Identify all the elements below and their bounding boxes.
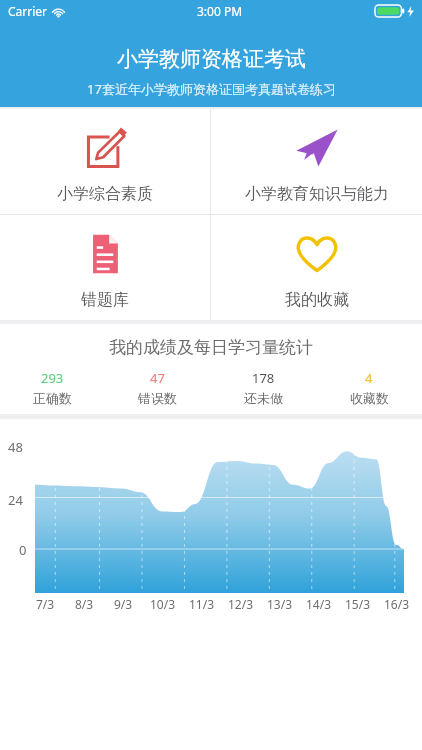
staticText: 24 xyxy=(8,491,23,509)
staticText: 48 xyxy=(8,438,23,456)
staticText: 4 xyxy=(365,369,373,387)
staticText: 14/3 xyxy=(306,596,332,612)
button[interactable]: 47 xyxy=(105,369,210,406)
staticText: 正确数 xyxy=(33,390,72,406)
button[interactable]: 178 xyxy=(210,369,316,406)
staticText: 3:00 PM xyxy=(197,3,243,19)
staticText: 我的成绩及每日学习量统计 xyxy=(109,337,313,358)
staticText: Carrier xyxy=(8,3,48,19)
staticText: 178 xyxy=(252,369,275,387)
staticText: 错题库 xyxy=(81,290,129,310)
staticText: 15/3 xyxy=(345,596,371,612)
button[interactable]: 小学教育知识与能力 xyxy=(211,109,422,214)
staticText: 小学教师资格证考试 xyxy=(117,46,306,72)
staticText: 16/3 xyxy=(384,596,410,612)
staticText: 还未做 xyxy=(244,390,283,406)
staticText: 9/3 xyxy=(114,596,133,612)
staticText: 12/3 xyxy=(228,596,254,612)
staticText: 47 xyxy=(150,369,165,387)
button[interactable]: 小学综合素质 xyxy=(0,109,210,214)
staticText: 错误数 xyxy=(138,390,177,406)
button[interactable]: 我的收藏 xyxy=(211,215,422,320)
staticText: 293 xyxy=(41,369,64,387)
button[interactable]: 错题库 xyxy=(0,215,210,320)
button[interactable]: 4 xyxy=(316,369,422,406)
button[interactable]: 293 xyxy=(0,369,105,406)
staticText: 10/3 xyxy=(150,596,176,612)
staticText: 8/3 xyxy=(75,596,94,612)
staticText: 13/3 xyxy=(267,596,293,612)
staticText: 小学综合素质 xyxy=(57,184,153,204)
staticText: 小学教育知识与能力 xyxy=(245,184,389,204)
staticText: 收藏数 xyxy=(350,390,389,406)
staticText: 0 xyxy=(19,541,27,559)
staticText: 7/3 xyxy=(36,596,55,612)
staticText: 17套近年小学教师资格证国考真题试卷练习 xyxy=(87,80,336,98)
staticText: 11/3 xyxy=(189,596,215,612)
staticText: 我的收藏 xyxy=(285,290,349,310)
